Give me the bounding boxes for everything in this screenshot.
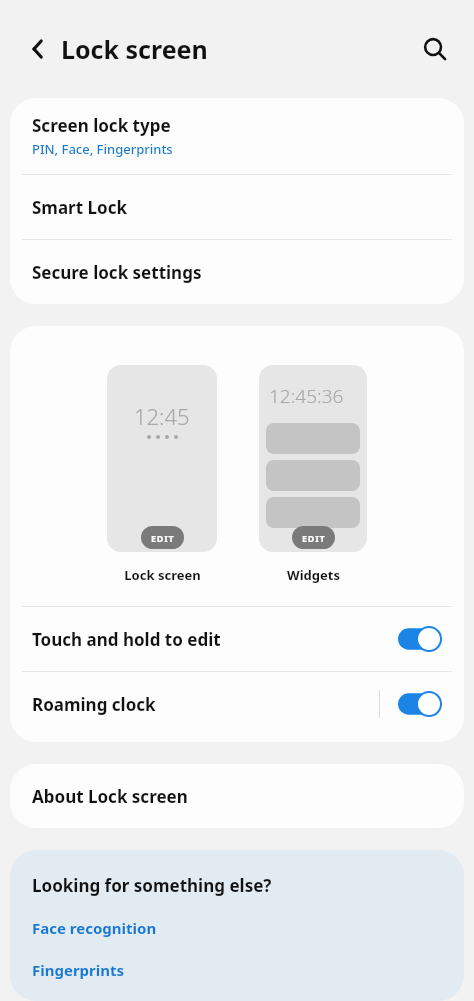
staticText: Face recognition	[32, 918, 157, 938]
button[interactable]: 12:45:36	[259, 365, 367, 552]
button[interactable]: Roaming clock	[10, 672, 464, 736]
staticText: About Lock screen	[32, 785, 188, 808]
staticText: PIN, Face, Fingerprints	[32, 140, 173, 158]
button[interactable]: EDIT	[292, 526, 335, 549]
button[interactable]: EDIT	[141, 526, 184, 549]
staticText: 12:45:36	[269, 383, 344, 409]
button[interactable]: 12:45	[107, 365, 217, 552]
staticText: Lock screen	[61, 32, 208, 66]
staticText: Lock screen	[124, 566, 201, 584]
staticText: Screen lock type	[32, 114, 171, 137]
staticText: Fingerprints	[32, 960, 125, 980]
button[interactable]: Smart Lock	[10, 175, 464, 239]
staticText: Widgets	[287, 566, 340, 584]
staticText: Roaming clock	[32, 693, 156, 716]
staticText: Looking for something else?	[32, 874, 272, 897]
staticText: EDIT	[151, 532, 175, 544]
button[interactable]: Touch and hold to edit	[10, 607, 464, 671]
staticText: 12:45	[134, 401, 190, 431]
staticText: EDIT	[302, 532, 326, 544]
staticText: Smart Lock	[32, 196, 127, 219]
button[interactable]: Fingerprints	[10, 957, 464, 983]
button[interactable]: Back	[20, 31, 56, 67]
staticText: Secure lock settings	[32, 261, 202, 284]
button[interactable]: Secure lock settings	[10, 240, 464, 304]
button[interactable]: Screen lock type	[10, 98, 464, 174]
button[interactable]: Face recognition	[10, 915, 464, 941]
button[interactable]: About Lock screen	[10, 764, 464, 828]
button[interactable]: Search	[415, 29, 455, 69]
staticText: Touch and hold to edit	[32, 628, 221, 651]
